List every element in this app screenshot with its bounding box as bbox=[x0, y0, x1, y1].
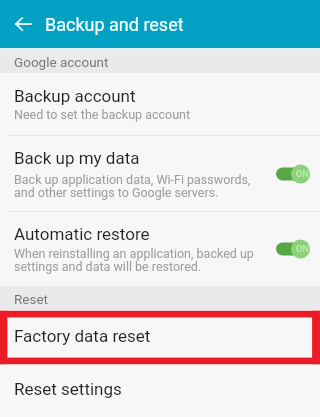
staticText: Backup account bbox=[14, 86, 136, 106]
button[interactable]: Reset settings bbox=[0, 363, 320, 416]
staticText: ON bbox=[296, 169, 309, 180]
staticText: Backup and reset bbox=[45, 14, 184, 35]
staticText: When reinstalling an application, backed… bbox=[14, 246, 254, 274]
staticText: Reset settings bbox=[14, 379, 122, 399]
staticText: Automatic restore bbox=[14, 224, 150, 244]
staticText: Google account bbox=[14, 54, 109, 70]
button[interactable]: Factory data reset bbox=[0, 310, 320, 362]
staticText: ON bbox=[296, 244, 309, 255]
button[interactable]: Back bbox=[0, 0, 45, 48]
staticText: Factory data reset bbox=[14, 326, 151, 346]
button[interactable]: Toggle bbox=[276, 163, 310, 185]
button[interactable]: Toggle bbox=[276, 238, 310, 260]
staticText: Back up application data, Wi-Fi password… bbox=[14, 172, 251, 200]
button[interactable]: Automatic restore bbox=[0, 212, 320, 286]
button[interactable]: Back up my data bbox=[0, 136, 320, 211]
button[interactable]: Backup account bbox=[0, 73, 320, 135]
staticText: Need to set the backup account bbox=[14, 107, 191, 122]
staticText: Back up my data bbox=[14, 148, 140, 168]
staticText: Reset bbox=[14, 291, 49, 307]
